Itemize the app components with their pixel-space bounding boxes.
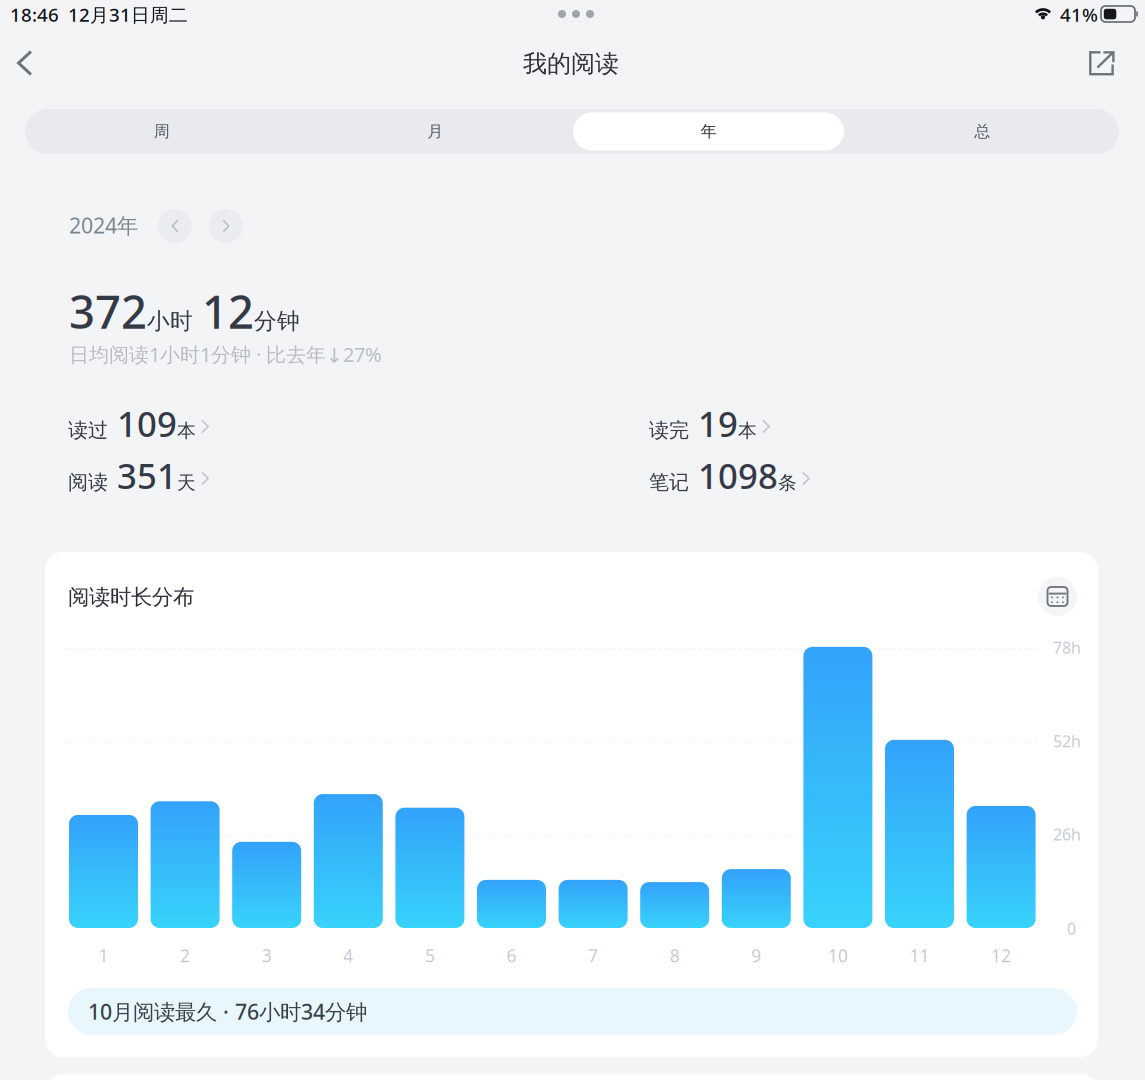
staticText: 12 — [991, 944, 1011, 967]
staticText: 7 — [588, 944, 598, 967]
staticText: 109 — [108, 400, 177, 446]
staticText: 2 — [180, 944, 190, 967]
staticText: 52h — [1053, 730, 1081, 751]
staticText: 10 — [828, 944, 848, 967]
staticText: 6 — [506, 944, 516, 967]
button[interactable]: Previous year — [158, 209, 192, 243]
staticText: 月 — [427, 122, 443, 141]
staticText: 4 — [343, 944, 353, 967]
button[interactable]: 总 — [845, 109, 1119, 154]
staticText: 总 — [974, 122, 990, 141]
staticText: 本 — [738, 419, 757, 442]
staticText: 78h — [1053, 637, 1081, 658]
staticText: 周 — [154, 122, 170, 141]
button[interactable]: 周 — [25, 109, 298, 154]
staticText: 0 — [1067, 918, 1076, 939]
button[interactable]: 阅读 — [68, 458, 204, 493]
staticText: 天 — [177, 471, 196, 494]
button[interactable]: Share — [1081, 43, 1123, 84]
staticText: 读完 — [649, 418, 689, 443]
button[interactable]: 读完 — [649, 406, 765, 441]
staticText: 小时 — [147, 307, 193, 335]
staticText: 笔记 — [649, 470, 689, 495]
staticText: 年 — [701, 122, 717, 141]
staticText: 1098 — [689, 452, 778, 498]
staticText: 26h — [1053, 824, 1081, 845]
staticText: 10月阅读最久 · 76小时34分钟 — [88, 997, 367, 1026]
staticText: 读过 — [68, 418, 108, 443]
staticText: 18:46 — [10, 2, 59, 27]
staticText: 372 — [69, 281, 147, 341]
button[interactable]: 读过 — [68, 406, 204, 441]
staticText: 2024年 — [69, 211, 138, 239]
staticText: 条 — [778, 471, 797, 494]
button[interactable]: 月 — [298, 109, 572, 154]
staticText: 12 — [202, 281, 254, 341]
staticText: 阅读时长分布 — [68, 584, 194, 610]
staticText: 11 — [909, 944, 929, 967]
button[interactable]: Pick month — [1038, 577, 1077, 616]
staticText: 本 — [177, 419, 196, 442]
button[interactable]: Back — [4, 37, 45, 89]
button[interactable]: 年 — [572, 109, 845, 154]
staticText: 我的阅读 — [523, 49, 619, 78]
button[interactable]: 笔记 — [649, 458, 805, 493]
staticText: 351 — [108, 452, 177, 498]
staticText: 3 — [262, 944, 272, 967]
button[interactable]: Next year — [209, 209, 243, 243]
staticText: 41% — [1060, 2, 1098, 27]
staticText: 分钟 — [254, 307, 300, 335]
staticText: 19 — [689, 400, 738, 446]
staticText: 阅读 — [68, 470, 108, 495]
staticText: 8 — [670, 944, 680, 967]
staticText: 5 — [425, 944, 435, 967]
staticText: 1 — [98, 944, 108, 967]
staticText: 日均阅读1小时1分钟 · 比去年↓27% — [69, 341, 382, 368]
staticText: 9 — [751, 944, 761, 967]
staticText: 12月31日周二 — [68, 2, 188, 27]
